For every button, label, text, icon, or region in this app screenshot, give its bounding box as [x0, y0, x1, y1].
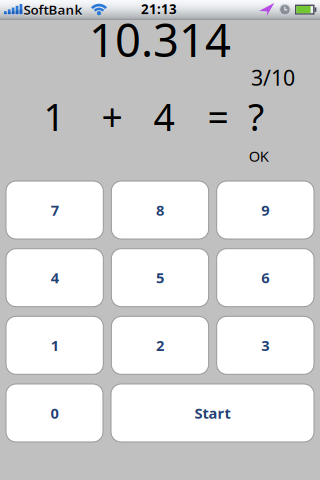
staticText: 7	[51, 200, 59, 220]
button[interactable]: 6	[217, 249, 314, 307]
staticText: 1	[43, 92, 64, 141]
button[interactable]: 5	[111, 249, 209, 307]
staticText: 8	[156, 200, 164, 220]
staticText: SoftBank	[23, 1, 82, 19]
staticText: 0	[50, 403, 58, 423]
staticText: 3	[261, 336, 269, 355]
staticText: OK	[249, 146, 269, 166]
button[interactable]: 3	[217, 316, 314, 374]
staticText: 3/10	[251, 63, 295, 92]
staticText: 1	[51, 336, 59, 355]
staticText: 4	[51, 268, 59, 287]
staticText: 9	[261, 200, 269, 220]
button[interactable]: 9	[217, 181, 314, 239]
button[interactable]: 2	[111, 316, 209, 374]
staticText: 6	[261, 268, 269, 287]
staticText: ?	[248, 92, 264, 141]
button[interactable]: 0	[6, 384, 103, 442]
button[interactable]: Start	[111, 384, 314, 442]
staticText: 10.314	[89, 9, 231, 69]
staticText: =	[207, 92, 228, 141]
staticText: SoftBank	[23, 1, 82, 18]
staticText: 4	[153, 92, 174, 141]
staticText: Start	[194, 403, 230, 423]
staticText: 2	[156, 336, 164, 355]
button[interactable]: 7	[6, 181, 103, 239]
staticText: 21:13	[141, 0, 177, 18]
staticText: 5	[156, 268, 164, 287]
staticText: 21:13	[141, 1, 177, 19]
button[interactable]: 1	[6, 316, 103, 374]
button[interactable]: 8	[111, 181, 209, 239]
button[interactable]: 4	[6, 249, 103, 307]
staticText: +	[101, 92, 122, 141]
